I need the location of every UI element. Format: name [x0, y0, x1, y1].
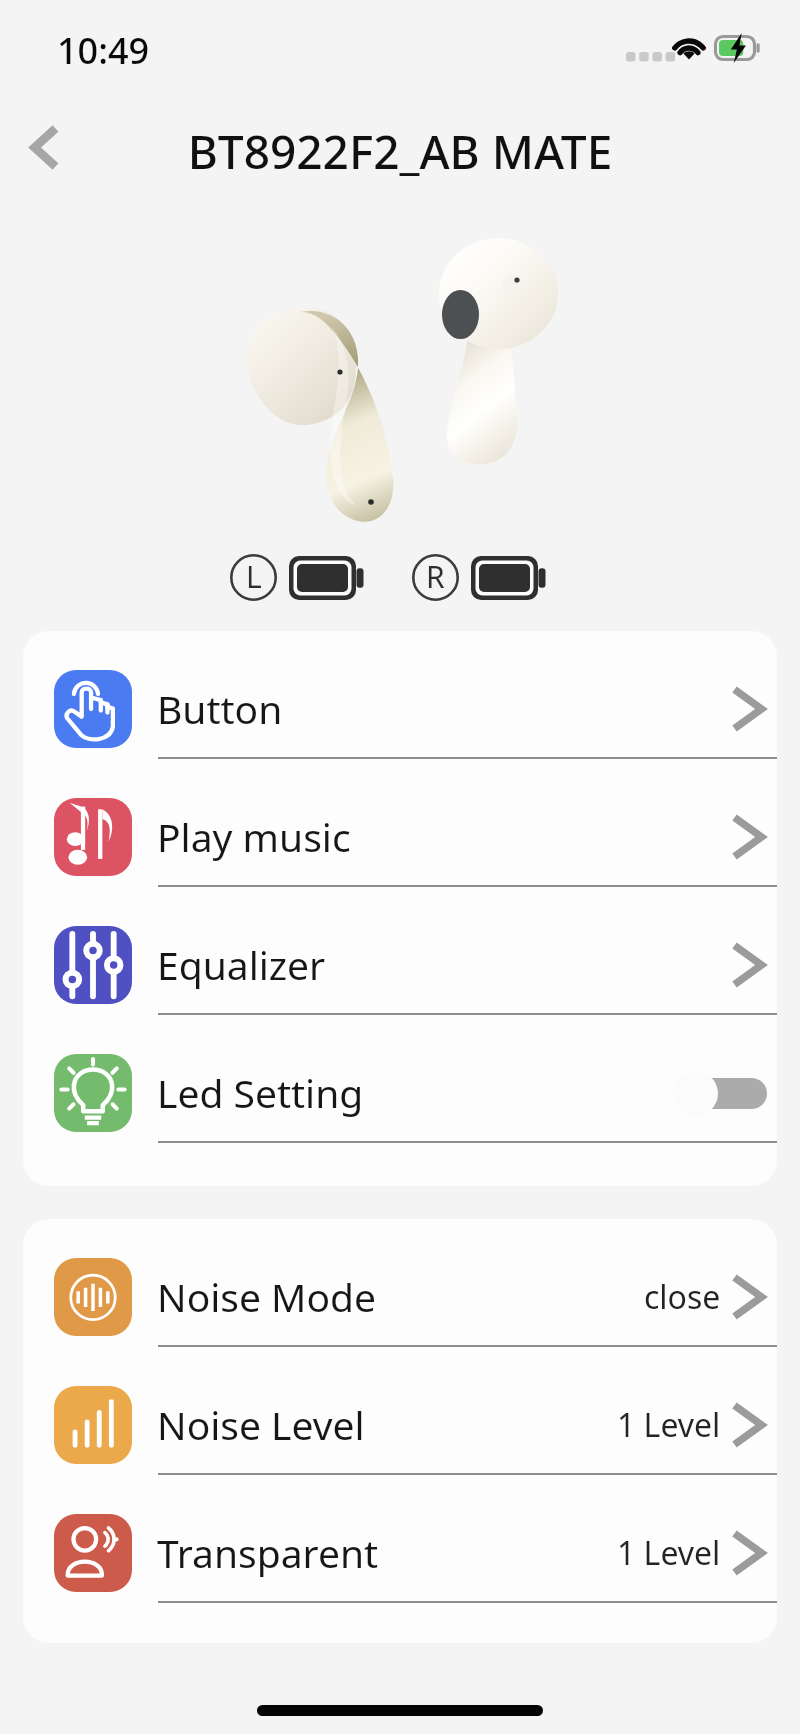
staticText: Noise Mode — [157, 1270, 377, 1323]
button[interactable]: Led Setting — [23, 1029, 777, 1157]
staticText: Button — [157, 682, 283, 735]
button[interactable]: Equalizer — [23, 901, 777, 1029]
staticText: Equalizer — [157, 938, 326, 991]
button[interactable]: Transparent — [23, 1489, 777, 1617]
staticText: Led Setting — [157, 1066, 364, 1119]
staticText: close — [644, 1275, 721, 1319]
button[interactable]: Back — [14, 114, 80, 180]
button[interactable]: Noise Level — [23, 1361, 777, 1489]
staticText: Noise Level — [157, 1398, 365, 1451]
staticText: BT8922F2_AB MATE — [0, 120, 800, 183]
staticText: R — [426, 556, 445, 597]
staticText: L — [246, 556, 262, 597]
button[interactable]: Noise Mode — [23, 1233, 777, 1361]
staticText: 1 Level — [617, 1403, 721, 1447]
button[interactable]: Button — [23, 645, 777, 773]
button[interactable]: Play music — [23, 773, 777, 901]
staticText: Transparent — [157, 1526, 379, 1579]
staticText: 1 Level — [617, 1531, 721, 1575]
staticText: 10:49 — [57, 26, 150, 75]
staticText: Play music — [157, 810, 351, 863]
